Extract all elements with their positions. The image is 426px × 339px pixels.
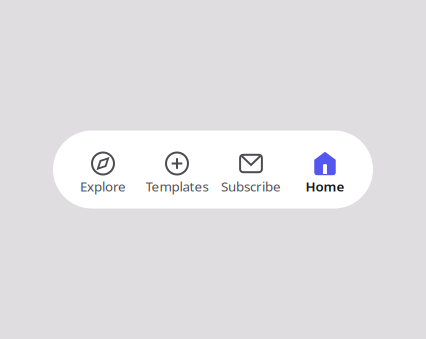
- button[interactable]: Templates: [140, 130, 214, 208]
- staticText: Templates: [145, 177, 208, 195]
- button[interactable]: Explore: [66, 130, 140, 208]
- staticText: Explore: [80, 177, 126, 195]
- button[interactable]: Home: [288, 130, 362, 208]
- button[interactable]: Subscribe: [214, 130, 288, 208]
- staticText: Subscribe: [221, 177, 281, 195]
- staticText: Home: [305, 177, 344, 195]
